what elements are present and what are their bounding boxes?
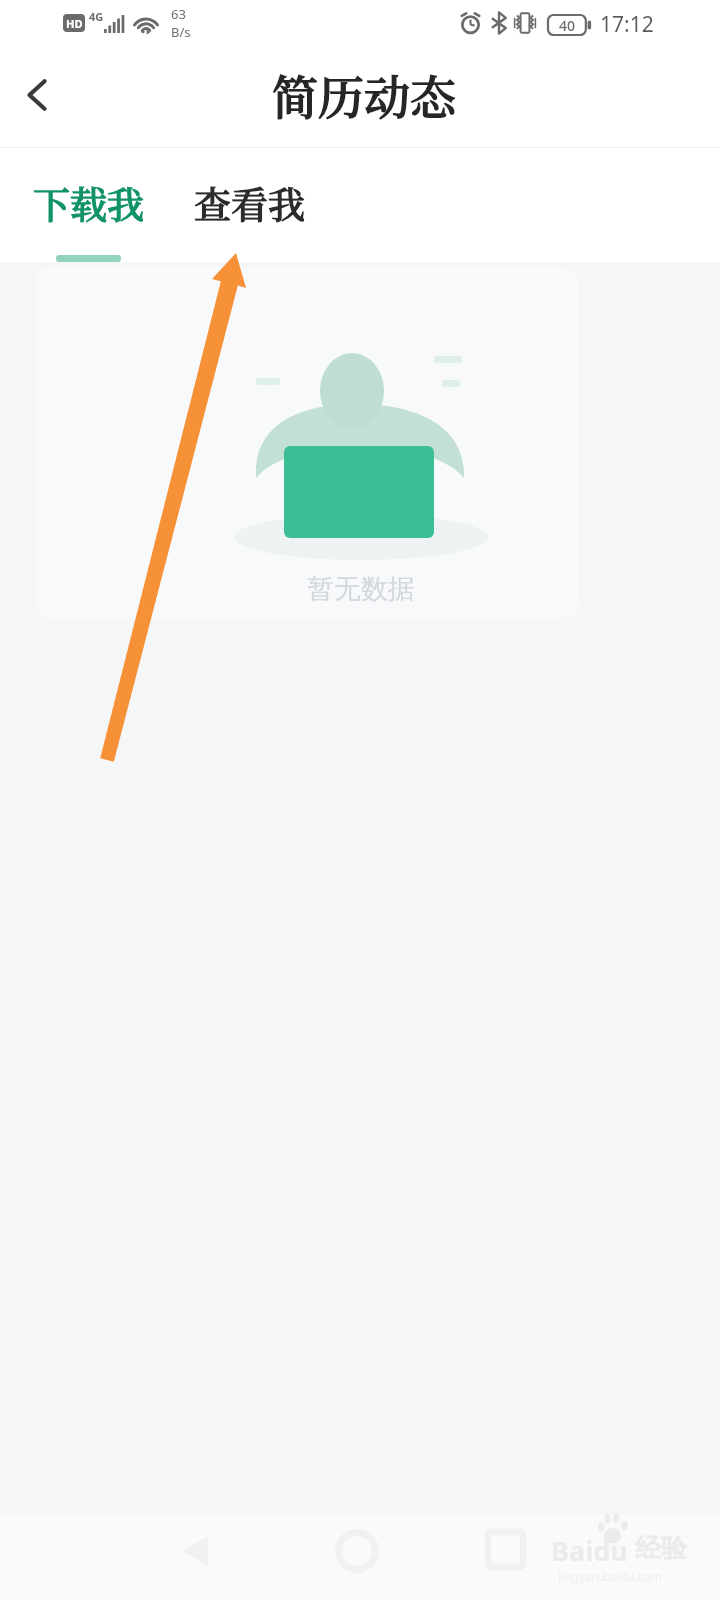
button[interactable]: Back — [166, 1522, 224, 1580]
staticText: 63 — [171, 5, 186, 23]
button[interactable]: 下载我 — [20, 148, 156, 262]
staticText: 17:12 — [600, 10, 654, 39]
staticText: Baidu — [551, 1532, 628, 1569]
button[interactable]: Back — [6, 64, 68, 126]
staticText: HD — [66, 16, 83, 31]
staticText: 暂无数据 — [307, 572, 415, 606]
button[interactable]: Home — [328, 1522, 386, 1580]
staticText: 40 — [559, 16, 576, 35]
staticText: jingyan.baidu.com — [558, 1568, 662, 1584]
staticText: B/s — [171, 23, 191, 41]
staticText: 下载我 — [33, 176, 144, 229]
staticText: 查看我 — [194, 176, 305, 229]
button[interactable]: 查看我 — [180, 148, 320, 262]
staticText: 4G — [89, 9, 104, 24]
staticText: 简历动态 — [272, 61, 456, 127]
staticText: 经验 — [635, 1532, 687, 1565]
button[interactable]: Recents — [476, 1520, 534, 1578]
